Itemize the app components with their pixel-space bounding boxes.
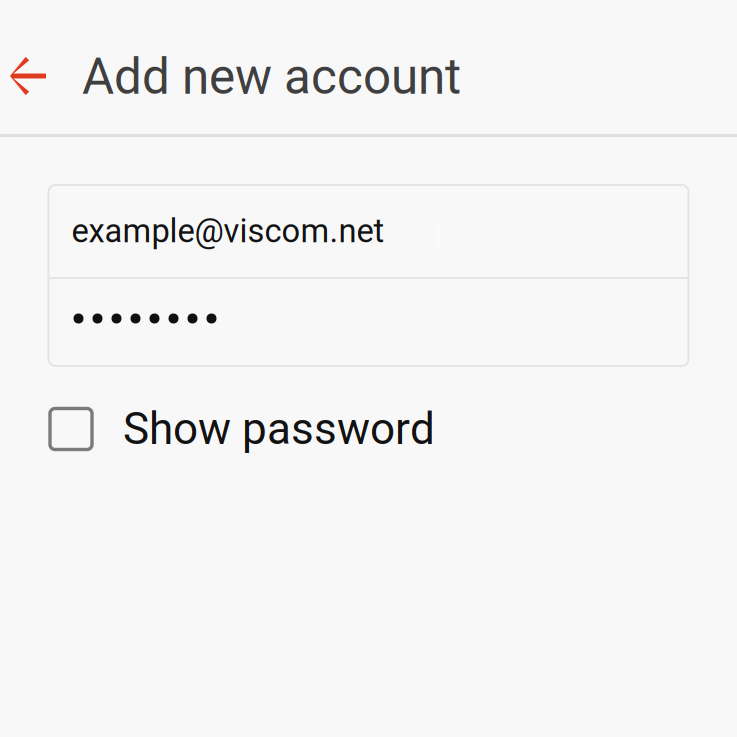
- button[interactable]: Back: [10, 35, 82, 119]
- staticText: Show password: [123, 403, 435, 455]
- button[interactable]: Show password: [50, 397, 435, 461]
- staticText: example@viscom.net: [71, 212, 384, 250]
- button[interactable]: example@viscom.net: [48, 185, 688, 277]
- staticText: Add new account: [82, 48, 461, 106]
- button[interactable]: Password: [48, 279, 688, 366]
